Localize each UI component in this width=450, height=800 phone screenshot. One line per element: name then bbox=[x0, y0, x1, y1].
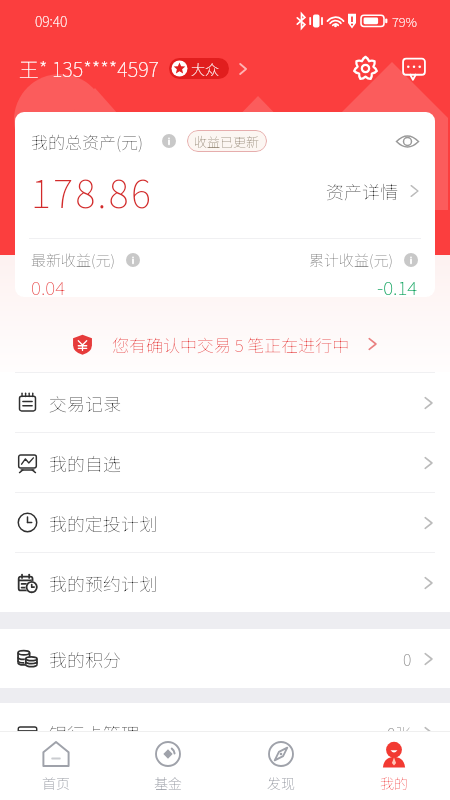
staticText: 基金 bbox=[154, 773, 182, 793]
staticText: 资产详情 bbox=[326, 178, 398, 204]
staticText: 发现 bbox=[267, 773, 295, 793]
button[interactable]: 基金 bbox=[112, 732, 224, 800]
staticText: 王* 135****4597 bbox=[19, 54, 160, 83]
staticText: 0张 bbox=[387, 721, 412, 744]
staticText: 我的 bbox=[380, 773, 408, 793]
button[interactable]: Settings bbox=[347, 50, 383, 86]
staticText: 我的总资产(元) bbox=[31, 129, 144, 154]
staticText: 大众 bbox=[191, 59, 219, 79]
button[interactable]: 资产详情 bbox=[326, 178, 421, 204]
button[interactable]: 交易记录 bbox=[0, 373, 450, 432]
button[interactable]: Messages bbox=[396, 50, 432, 86]
button[interactable]: 您有确认中交易 5 笔正在进行中 bbox=[0, 319, 450, 369]
button[interactable]: 收益已更新 bbox=[187, 130, 267, 152]
staticText: -0.14 bbox=[377, 273, 418, 297]
staticText: 银行卡管理 bbox=[49, 720, 139, 746]
staticText: 我的自选 bbox=[49, 450, 121, 476]
staticText: 我的积分 bbox=[49, 646, 121, 672]
staticText: 178.86 bbox=[31, 164, 154, 219]
staticText: 0 bbox=[403, 647, 412, 670]
staticText: 最新收益(元) bbox=[31, 249, 115, 271]
staticText: 我的预约计划 bbox=[49, 570, 157, 596]
staticText: 交易记录 bbox=[49, 390, 121, 416]
staticText: 0.04 bbox=[31, 273, 66, 297]
staticText: 09:40 bbox=[35, 11, 68, 31]
staticText: 首页 bbox=[42, 773, 70, 793]
button[interactable]: 我的自选 bbox=[0, 433, 450, 492]
staticText: 累计收益(元) bbox=[309, 249, 393, 271]
button[interactable]: 我的 bbox=[337, 732, 450, 800]
button[interactable]: 我的定投计划 bbox=[0, 493, 450, 552]
button[interactable]: 首页 bbox=[0, 732, 112, 800]
button[interactable]: 累计收益(元) bbox=[309, 249, 418, 297]
button[interactable]: 银行卡管理 bbox=[0, 703, 450, 762]
button[interactable]: 我的积分 bbox=[0, 629, 450, 688]
staticText: 您有确认中交易 5 笔正在进行中 bbox=[112, 332, 350, 357]
staticText: 我的定投计划 bbox=[49, 510, 157, 536]
button[interactable]: Toggle amount visibility bbox=[392, 126, 422, 156]
staticText: 79% bbox=[392, 12, 417, 31]
staticText: 收益已更新 bbox=[194, 132, 260, 151]
button[interactable]: 最新收益(元) bbox=[31, 249, 140, 297]
button[interactable]: 我的预约计划 bbox=[0, 553, 450, 612]
button[interactable]: 发现 bbox=[224, 732, 337, 800]
button[interactable]: 王* 135****4597 bbox=[19, 54, 250, 83]
